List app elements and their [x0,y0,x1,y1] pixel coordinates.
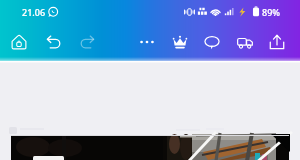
button[interactable]: Delivery [232,29,258,55]
button[interactable]: Home [6,29,32,55]
staticText: 21.06 [22,6,46,18]
button[interactable]: Premium [167,29,193,55]
button[interactable]: Comments [199,29,225,55]
button[interactable]: More options [134,29,160,55]
button[interactable]: Back [41,29,67,55]
button[interactable]: Forward [74,29,100,55]
button[interactable]: Share [264,29,290,55]
staticText: 89% [262,6,280,18]
